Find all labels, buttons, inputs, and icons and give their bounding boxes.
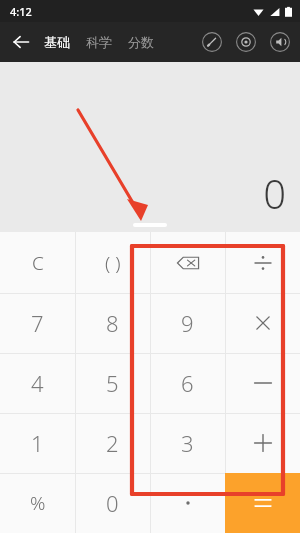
staticText: 7 [31, 308, 44, 338]
button[interactable]: 1 [0, 413, 75, 473]
staticText: 6 [181, 368, 194, 398]
button[interactable]: 基础 [42, 30, 72, 54]
staticText: 1 [31, 428, 44, 458]
button[interactable]: 0 [75, 473, 150, 533]
button[interactable]: 3 [150, 413, 225, 473]
button[interactable]: 4 [0, 353, 75, 413]
button[interactable]: 5 [75, 353, 150, 413]
button[interactable]: Add [225, 413, 300, 473]
staticText: 3 [181, 428, 194, 458]
button[interactable]: 6 [150, 353, 225, 413]
staticText: 分数 [128, 34, 154, 50]
button[interactable]: 2 [75, 413, 150, 473]
button[interactable]: 科学 [84, 30, 114, 54]
staticText: 4 [31, 368, 44, 398]
button[interactable]: Back [4, 25, 38, 59]
staticText: 8 [106, 308, 119, 338]
button[interactable]: 7 [0, 293, 75, 353]
staticText: C [32, 250, 44, 276]
button[interactable]: C [0, 232, 75, 293]
button[interactable] [150, 473, 225, 533]
staticText: % [30, 490, 46, 516]
button[interactable]: Multiply [225, 293, 300, 353]
button[interactable]: Divide [225, 232, 300, 293]
button[interactable]: Sound [266, 28, 294, 56]
button[interactable]: 9 [150, 293, 225, 353]
staticText: 基础 [44, 34, 70, 50]
button[interactable]: Subtract [225, 353, 300, 413]
staticText: 4:12 [10, 4, 32, 19]
staticText: 0 [263, 166, 286, 220]
staticText: 9 [181, 308, 194, 338]
staticText: 0 [106, 488, 119, 518]
staticText: 科学 [86, 34, 112, 50]
button[interactable]: 8 [75, 293, 150, 353]
staticText: ( ) [105, 250, 121, 276]
button[interactable]: Equals [225, 473, 300, 533]
button[interactable]: Theme [232, 28, 260, 56]
button[interactable]: Backspace [150, 232, 225, 293]
button[interactable]: Edit [198, 28, 226, 56]
button[interactable]: ( ) [75, 232, 150, 293]
staticText: 5 [106, 368, 119, 398]
staticText: 2 [106, 428, 119, 458]
button[interactable]: % [0, 473, 75, 533]
button[interactable]: 分数 [126, 30, 156, 54]
